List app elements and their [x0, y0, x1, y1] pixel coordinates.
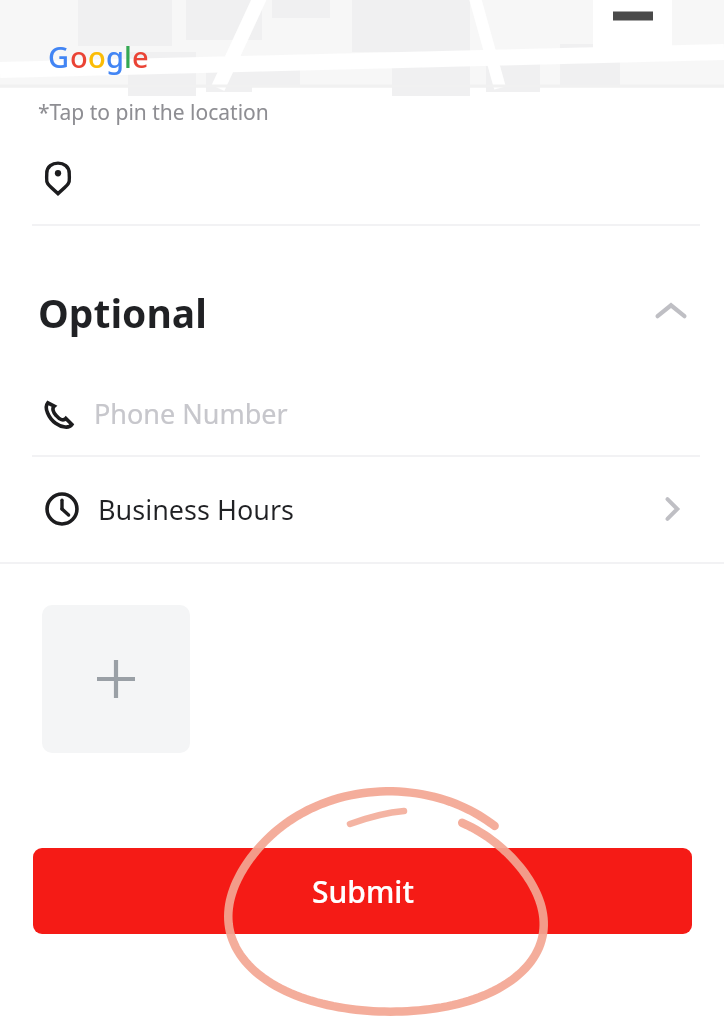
button[interactable]: Submit: [33, 848, 692, 934]
staticText: G: [48, 37, 70, 76]
button[interactable]: Map, tap to pin the location: [0, 0, 724, 88]
button[interactable]: Optional: [0, 286, 724, 338]
button[interactable]: Zoom out: [593, 0, 672, 58]
staticText: o: [88, 37, 106, 76]
staticText: Optional: [38, 286, 207, 338]
staticText: Phone Number: [94, 395, 288, 432]
staticText: e: [132, 37, 149, 76]
staticText: Submit: [312, 871, 414, 912]
button[interactable]: Phone Number: [0, 390, 724, 436]
staticText: o: [70, 37, 88, 76]
staticText: Business Hours: [98, 491, 295, 528]
other: Open business hours: [653, 490, 691, 528]
staticText: l: [124, 37, 132, 76]
other: Collapse: [650, 291, 692, 333]
button[interactable]: [0, 155, 724, 201]
staticText: g: [106, 37, 124, 76]
button[interactable]: Add photo: [42, 605, 190, 753]
staticText: *Tap to pin the location: [38, 98, 269, 127]
button[interactable]: Business Hours: [0, 484, 724, 534]
